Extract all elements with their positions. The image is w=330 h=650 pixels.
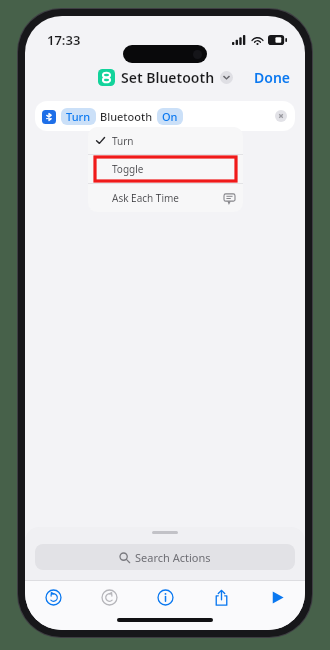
button[interactable]: Share xyxy=(193,581,249,614)
button[interactable]: Turn xyxy=(88,127,243,154)
button[interactable]: Undo xyxy=(25,581,81,614)
staticText: Ask Each Time xyxy=(112,191,179,205)
staticText: Toggle xyxy=(112,162,144,176)
staticText: Search Actions xyxy=(135,550,211,565)
staticText: 17:33 xyxy=(47,31,81,49)
button[interactable]: Ask Each Time xyxy=(88,184,243,212)
staticText: On xyxy=(162,109,178,124)
button[interactable]: Toggle xyxy=(88,155,243,183)
button[interactable]: Info xyxy=(137,581,193,614)
button[interactable]: Redo xyxy=(81,581,137,614)
staticText: Set Bluetooth xyxy=(121,68,215,87)
button[interactable]: Search Actions xyxy=(35,544,295,570)
staticText: Bluetooth xyxy=(100,109,153,124)
button[interactable]: Remove action xyxy=(275,110,287,122)
button[interactable]: Turn xyxy=(35,101,295,131)
staticText: Turn xyxy=(66,109,91,124)
button[interactable]: Play xyxy=(249,581,305,614)
button[interactable]: Done xyxy=(254,68,291,87)
button[interactable]: Set Bluetooth xyxy=(98,68,233,87)
staticText: Turn xyxy=(112,134,134,148)
staticText: Done xyxy=(254,68,291,87)
